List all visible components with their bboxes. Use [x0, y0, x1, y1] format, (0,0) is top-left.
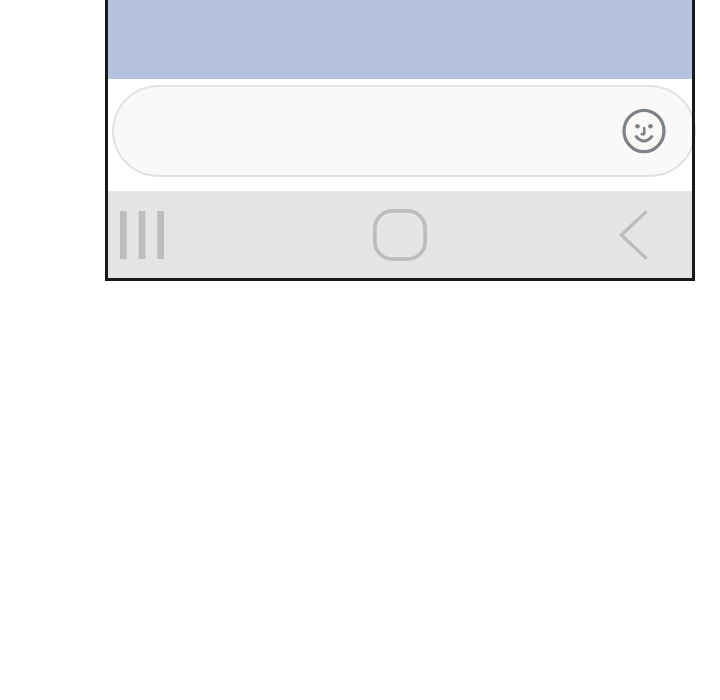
button[interactable]: [112, 85, 696, 177]
button[interactable]: Insert emoji: [616, 103, 672, 159]
button[interactable]: Back: [598, 199, 670, 271]
button[interactable]: Recent apps: [110, 199, 174, 271]
button[interactable]: Home: [364, 199, 436, 271]
